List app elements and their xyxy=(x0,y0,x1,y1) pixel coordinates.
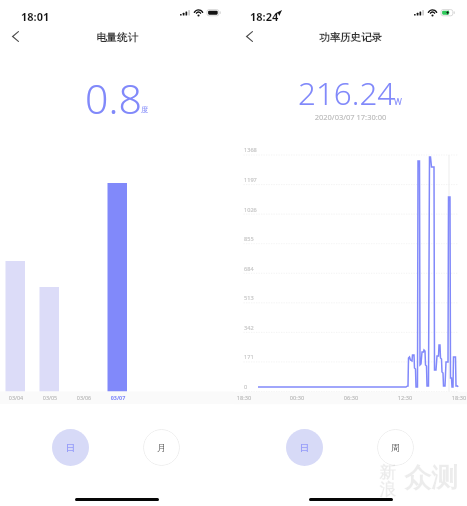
staticText: 度 xyxy=(141,105,149,114)
button[interactable]: 日 xyxy=(52,429,89,466)
staticText: 新 xyxy=(379,462,396,483)
staticText: 众测 xyxy=(404,461,458,495)
staticText: W xyxy=(394,96,402,108)
staticText: 1368 xyxy=(244,146,257,154)
staticText: 00:30 xyxy=(284,394,310,402)
staticText: 513 xyxy=(244,294,254,302)
staticText: 12:30 xyxy=(392,394,418,402)
staticText: 周 xyxy=(391,442,400,453)
button[interactable]: Back xyxy=(237,24,262,49)
staticText: 03/06 xyxy=(70,394,98,401)
button[interactable]: 月 xyxy=(143,429,180,466)
staticText: 1026 xyxy=(244,206,257,214)
staticText: 18:30 xyxy=(231,394,257,402)
button[interactable]: 周 xyxy=(377,429,414,466)
staticText: 18:24 xyxy=(250,9,279,24)
staticText: 06:30 xyxy=(338,394,364,402)
staticText: 功率历史记录 xyxy=(234,31,467,44)
staticText: 电量统计 xyxy=(0,31,234,44)
staticText: 03/07 xyxy=(104,394,132,401)
staticText: 2020/03/07 17:30:00 xyxy=(234,112,467,122)
staticText: 171 xyxy=(244,353,254,361)
staticText: 216.24 xyxy=(298,71,396,114)
staticText: 03/05 xyxy=(36,394,64,401)
staticText: 18:01 xyxy=(21,9,50,24)
staticText: 03/04 xyxy=(2,394,30,401)
staticText: 日 xyxy=(66,442,75,453)
staticText: 18:30 xyxy=(446,394,467,402)
staticText: 浪 xyxy=(379,479,396,500)
staticText: 月 xyxy=(157,442,166,453)
staticText: 684 xyxy=(244,265,254,273)
staticText: 日 xyxy=(300,442,309,453)
staticText: 0 xyxy=(244,383,248,391)
staticText: 0.8 xyxy=(85,70,142,126)
button[interactable]: Back xyxy=(3,24,28,49)
staticText: 1197 xyxy=(244,176,257,184)
staticText: 342 xyxy=(244,324,254,332)
button[interactable]: 日 xyxy=(286,429,323,466)
staticText: 855 xyxy=(244,235,254,243)
